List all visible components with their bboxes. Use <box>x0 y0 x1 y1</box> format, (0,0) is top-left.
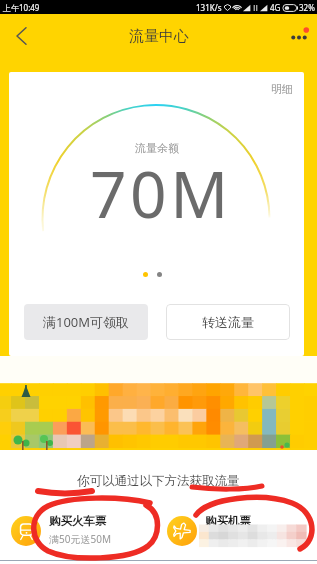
staticText: 你可以通过以下方法获取流量 <box>77 473 240 489</box>
button[interactable]: More options <box>277 14 317 58</box>
button[interactable]: Back <box>0 14 42 58</box>
staticText: 购买机票 <box>205 514 251 528</box>
staticText: 满100M可领取 <box>43 313 130 331</box>
staticText: 131K/s <box>196 2 222 13</box>
staticText: 上午10:49 <box>3 2 40 13</box>
staticText: 32% <box>299 2 315 13</box>
staticText: 第一次购买每月限5次 <box>205 532 301 546</box>
staticText: 购买火车票 <box>49 514 107 528</box>
staticText: 70M <box>90 150 232 237</box>
button[interactable]: 明细 <box>261 72 304 102</box>
button[interactable]: 满100M可领取 <box>24 304 148 340</box>
button[interactable] <box>0 385 317 450</box>
button[interactable]: 购买机票 <box>164 509 314 553</box>
staticText: 满50元送50M <box>49 532 111 546</box>
staticText: 转送流量 <box>202 314 254 330</box>
staticText: 流量余额 <box>135 141 179 155</box>
button[interactable]: 购买火车票 <box>8 509 158 553</box>
staticText: 4G <box>270 2 281 13</box>
staticText: 流量中心 <box>129 27 189 46</box>
button[interactable]: 转送流量 <box>166 304 290 340</box>
